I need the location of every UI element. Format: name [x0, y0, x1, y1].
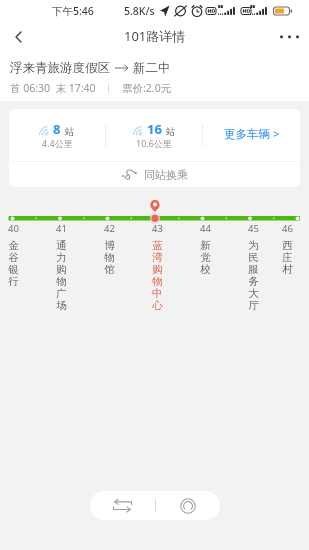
- button[interactable]: Switch direction: [90, 491, 155, 520]
- button[interactable]: More options: [269, 22, 309, 51]
- staticText: 站: [166, 126, 176, 138]
- button[interactable]: 16: [106, 109, 202, 161]
- staticText: 首 06:30 末 17:40: [10, 81, 96, 95]
- button[interactable]: 同站换乘: [9, 162, 300, 187]
- staticText: 浮来青旅游度假区: [10, 60, 110, 76]
- button[interactable]: 44: [181, 222, 229, 276]
- staticText: 41: [56, 222, 67, 235]
- staticText: 40: [8, 222, 19, 235]
- button[interactable]: 43: [133, 222, 181, 312]
- staticText: 42: [104, 222, 115, 235]
- button[interactable]: 42: [85, 222, 133, 276]
- staticText: 站: [65, 126, 75, 138]
- staticText: 为 民 服 务 大 厅: [248, 239, 259, 312]
- staticText: 金 谷 银 行: [8, 239, 19, 288]
- button[interactable]: Refresh: [156, 491, 220, 520]
- staticText: 通 力 购 物 广 场: [56, 239, 67, 312]
- button[interactable]: 更多车辆 >: [203, 109, 300, 161]
- staticText: 新 党 校: [200, 239, 211, 276]
- staticText: 101路详情: [124, 27, 186, 45]
- staticText: 46: [282, 222, 293, 235]
- button[interactable]: Back: [0, 22, 38, 51]
- button[interactable]: 41: [37, 222, 85, 312]
- button[interactable]: 40: [0, 222, 37, 288]
- staticText: 10.6公里: [136, 137, 172, 149]
- staticText: 8: [53, 120, 61, 138]
- staticText: 45: [248, 222, 259, 235]
- staticText: 同站换乘: [144, 168, 188, 182]
- staticText: 蓝 湾 购 物 中 心: [152, 239, 163, 312]
- staticText: 5.8K/s: [124, 4, 155, 18]
- staticText: 16: [147, 120, 162, 138]
- staticText: 西 庄 村: [282, 239, 293, 276]
- button[interactable]: 46: [277, 222, 298, 276]
- button[interactable]: 45: [229, 222, 277, 312]
- staticText: 44: [200, 222, 211, 235]
- staticText: 43: [152, 222, 163, 235]
- staticText: 更多车辆 >: [224, 126, 280, 142]
- staticText: 博 物 馆: [104, 239, 115, 276]
- button[interactable]: 8: [9, 109, 105, 161]
- staticText: 新二中: [133, 60, 171, 76]
- staticText: 4.4公里: [42, 137, 73, 149]
- staticText: 票价:2.0元: [122, 81, 172, 95]
- staticText: 下午5:46: [52, 4, 94, 18]
